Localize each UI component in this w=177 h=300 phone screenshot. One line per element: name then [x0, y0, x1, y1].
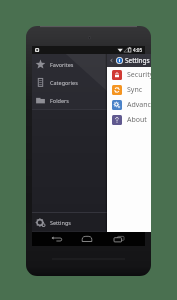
staticText: Settings — [125, 56, 150, 65]
staticText: Security — [127, 70, 151, 80]
button[interactable]: Settings — [107, 54, 151, 67]
button[interactable]: Folders — [32, 91, 145, 109]
button[interactable]: Advanced — [107, 97, 151, 112]
button[interactable]: Home — [77, 232, 97, 246]
staticText: About — [127, 115, 147, 125]
button[interactable]: Back — [47, 232, 67, 246]
button[interactable]: Settings — [32, 213, 145, 231]
button[interactable]: About — [107, 112, 151, 127]
button[interactable]: Security — [107, 67, 151, 82]
staticText: Advanced — [127, 100, 151, 110]
staticText: Folders — [50, 97, 69, 104]
staticText: Categories — [50, 79, 78, 86]
staticText: Favorites — [50, 61, 74, 68]
button[interactable]: Recents — [109, 232, 129, 246]
staticText: Sync — [127, 85, 143, 95]
button[interactable]: Categories — [32, 73, 145, 91]
button[interactable]: Sync — [107, 82, 151, 97]
staticText: Settings — [50, 219, 71, 226]
button[interactable]: Favorites — [32, 55, 145, 73]
staticText: 4:05 — [133, 47, 143, 53]
